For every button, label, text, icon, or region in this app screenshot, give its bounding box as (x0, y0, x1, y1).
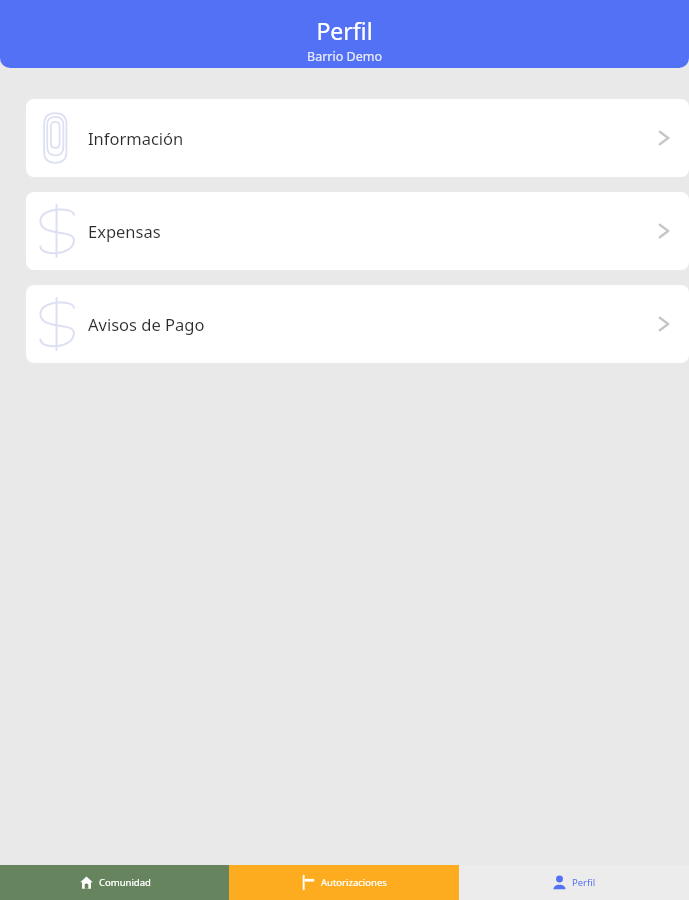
button[interactable]: Comunidad (0, 865, 229, 900)
staticText: Perfil (572, 876, 596, 889)
button[interactable]: Autorizaciones (229, 865, 459, 900)
staticText: Perfil (316, 15, 373, 46)
staticText: Barrio Demo (307, 48, 382, 65)
staticText: Avisos de Pago (88, 313, 205, 335)
button[interactable]: Avisos de Pago (26, 285, 689, 363)
staticText: Autorizaciones (321, 876, 387, 889)
staticText: Información (88, 127, 184, 149)
button[interactable]: Información (26, 99, 689, 177)
staticText: Comunidad (99, 876, 151, 889)
staticText: Expensas (88, 220, 161, 242)
button[interactable]: Expensas (26, 192, 689, 270)
button[interactable]: Perfil (459, 865, 689, 900)
